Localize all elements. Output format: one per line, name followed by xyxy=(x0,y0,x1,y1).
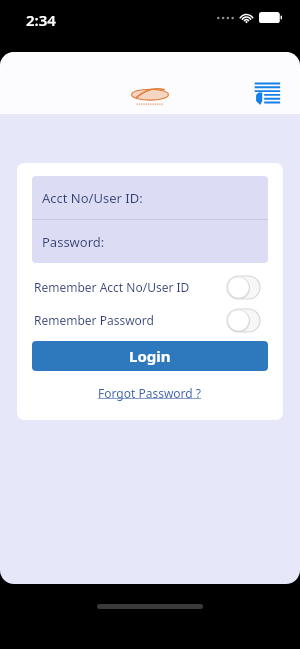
staticText: Remember Password xyxy=(34,312,154,328)
button[interactable]: Remember Acct No/User ID xyxy=(32,274,268,300)
staticText: Acct No/User ID: xyxy=(42,189,143,207)
button[interactable]: Menu xyxy=(250,76,284,110)
button[interactable]: Remember Password xyxy=(32,307,268,333)
staticText: Login xyxy=(129,346,171,366)
button[interactable]: Login xyxy=(32,341,268,371)
button[interactable]: Forgot Password ? xyxy=(95,382,205,404)
staticText: Password: xyxy=(42,233,105,251)
button[interactable]: Password: xyxy=(32,220,268,263)
staticText: 2:34 xyxy=(26,10,56,30)
staticText: Remember Acct No/User ID xyxy=(34,279,190,295)
button[interactable]: Acct No/User ID: xyxy=(32,176,268,219)
